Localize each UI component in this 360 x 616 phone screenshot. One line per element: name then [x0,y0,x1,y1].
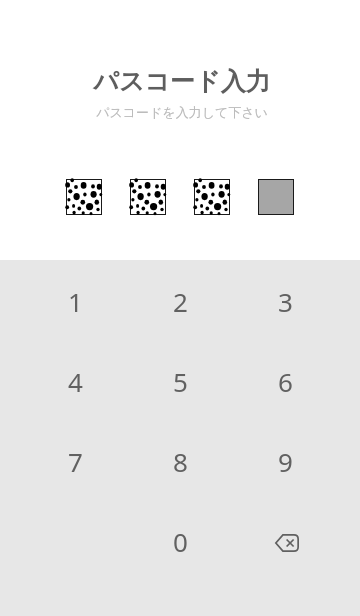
button[interactable]: Delete [233,501,338,581]
button[interactable] [131,180,165,214]
staticText: 0 [173,524,188,559]
staticText: 5 [173,364,188,399]
staticText: 2 [173,284,188,319]
button[interactable]: 2 [128,261,233,341]
staticText: 8 [173,444,188,479]
button[interactable] [195,180,229,214]
staticText: 7 [68,444,83,479]
button[interactable]: 3 [233,261,338,341]
button[interactable]: 5 [128,341,233,421]
button[interactable]: 9 [233,421,338,501]
button[interactable]: 6 [233,341,338,421]
staticText: パスコード入力 [2,66,360,97]
staticText: 9 [278,444,293,479]
button[interactable]: 7 [23,421,128,501]
button[interactable] [67,180,101,214]
staticText: パスコードを入力して下さい [2,104,360,120]
button[interactable]: 1 [23,261,128,341]
button[interactable]: 0 [128,501,233,581]
staticText: 1 [68,284,83,319]
staticText: 6 [278,364,293,399]
button[interactable]: 8 [128,421,233,501]
button[interactable]: 4 [23,341,128,421]
staticText: 3 [278,284,293,319]
staticText: 4 [68,364,83,399]
